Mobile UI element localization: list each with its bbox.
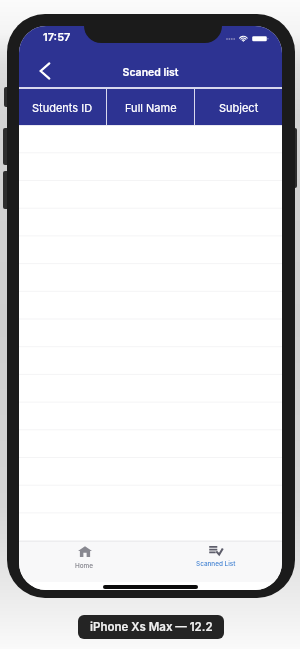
button[interactable]: Scanned List bbox=[150, 541, 282, 582]
staticText: Home bbox=[75, 562, 94, 570]
button[interactable]: Full Name bbox=[107, 89, 194, 125]
button[interactable]: Students ID bbox=[19, 89, 106, 125]
button[interactable]: Back bbox=[28, 54, 62, 88]
staticText: Scanned List bbox=[196, 560, 236, 568]
staticText: Scaned list bbox=[19, 66, 282, 79]
staticText: 17:57 bbox=[43, 30, 71, 43]
staticText: Subject bbox=[219, 101, 259, 114]
button[interactable]: Subject bbox=[195, 89, 282, 125]
button[interactable]: Home bbox=[19, 541, 150, 582]
staticText: iPhone Xs Max — 12.2 bbox=[90, 620, 213, 634]
staticText: Students ID bbox=[32, 101, 93, 114]
staticText: Full Name bbox=[125, 101, 177, 114]
